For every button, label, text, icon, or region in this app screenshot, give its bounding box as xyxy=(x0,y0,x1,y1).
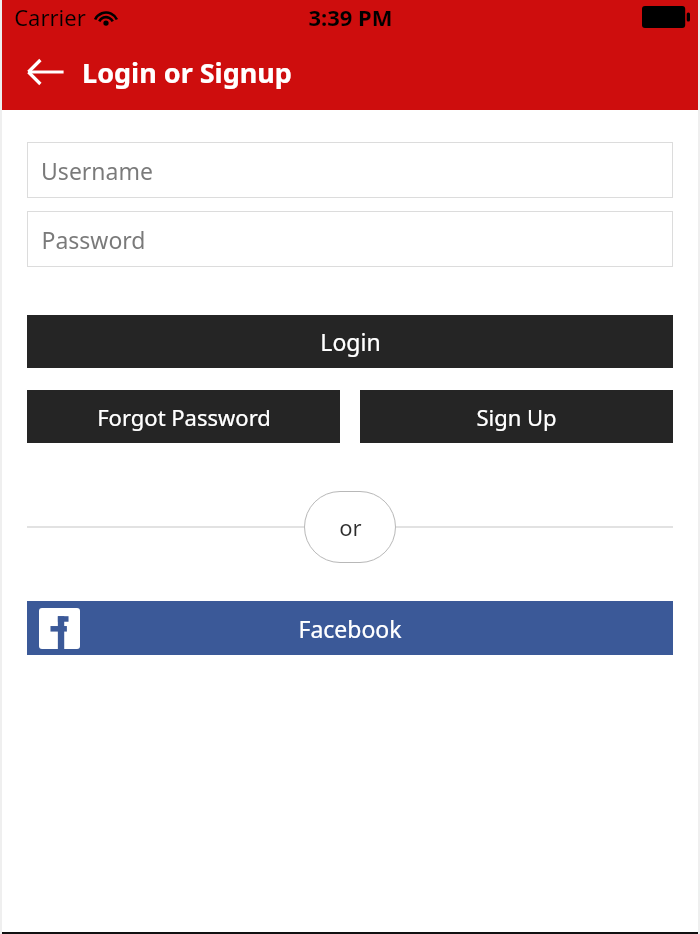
button[interactable]: Facebook xyxy=(27,601,673,655)
button[interactable]: Username xyxy=(27,142,673,198)
staticText: Password xyxy=(41,224,146,255)
staticText: Login xyxy=(320,326,381,357)
button[interactable]: Back xyxy=(20,46,72,98)
button[interactable]: Forgot Password xyxy=(27,390,340,443)
button[interactable]: Login xyxy=(27,315,673,368)
staticText: Carrier xyxy=(14,2,86,32)
staticText: Facebook xyxy=(298,613,402,644)
staticText: Sign Up xyxy=(476,402,557,432)
button[interactable]: Sign Up xyxy=(360,390,673,443)
staticText: 3:39 PM xyxy=(308,2,393,32)
button[interactable]: Password xyxy=(27,211,673,267)
staticText: Login or Signup xyxy=(82,54,292,91)
staticText: Username xyxy=(41,155,153,186)
staticText: Forgot Password xyxy=(97,402,271,432)
staticText: or xyxy=(339,512,362,542)
